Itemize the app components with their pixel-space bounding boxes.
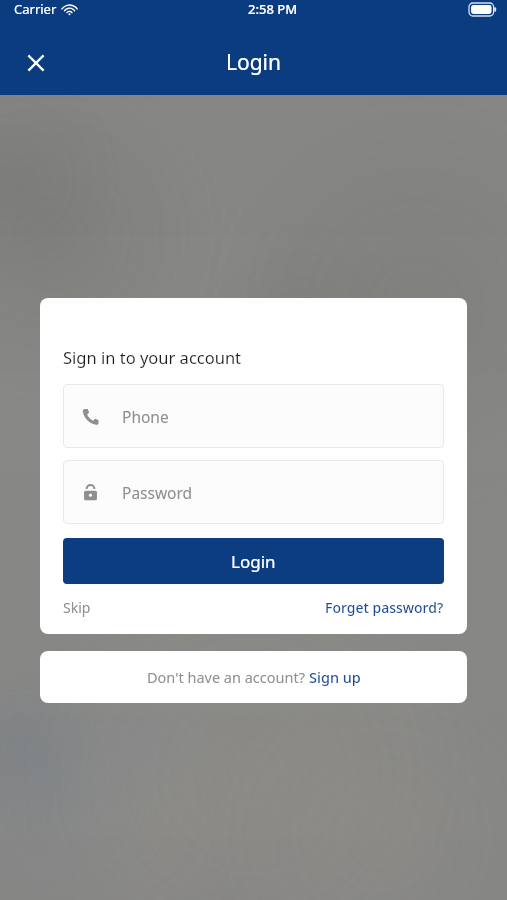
button[interactable]: Skip (63, 592, 91, 623)
staticText: Sign up (309, 667, 361, 687)
staticText: Login (226, 48, 282, 77)
button[interactable]: Forget password? (325, 592, 444, 623)
staticText: Forget password? (325, 598, 444, 617)
staticText: Sign in to your account (63, 346, 242, 368)
button[interactable]: Close (14, 41, 58, 85)
staticText: Don't have an account? (147, 667, 309, 687)
staticText: Password (122, 482, 193, 503)
staticText: Phone (122, 406, 169, 427)
button[interactable]: Don't have an account? (40, 651, 467, 703)
staticText: 2:58 PM (248, 0, 298, 18)
staticText: Skip (63, 598, 91, 617)
button[interactable]: Login (63, 538, 444, 584)
staticText: Carrier (14, 0, 57, 18)
staticText: Login (231, 550, 276, 573)
button[interactable]: Password (63, 460, 444, 524)
button[interactable]: Phone (63, 384, 444, 448)
